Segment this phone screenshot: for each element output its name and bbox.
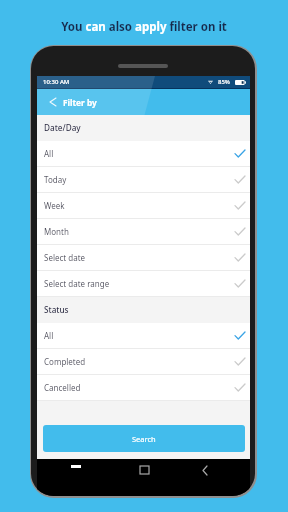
button[interactable]: Select date — [37, 245, 250, 271]
staticText: Cancelled — [44, 382, 81, 393]
button[interactable]: All — [37, 141, 250, 167]
staticText: Search — [132, 434, 156, 444]
button[interactable]: Today — [37, 167, 250, 193]
button[interactable]: Recent apps — [64, 457, 88, 475]
staticText: Today — [44, 174, 67, 185]
button[interactable]: Back — [41, 89, 65, 114]
button[interactable]: Home — [132, 461, 156, 479]
staticText: 85% — [218, 78, 230, 86]
staticText: Week — [44, 200, 65, 211]
button[interactable]: All — [37, 323, 250, 349]
staticText: All — [44, 330, 54, 341]
staticText: All — [44, 148, 54, 159]
button[interactable]: Search — [43, 425, 245, 452]
staticText: Date/Day — [44, 122, 81, 133]
staticText: Select date range — [44, 278, 110, 289]
staticText: 10:30 AM — [43, 78, 70, 86]
button[interactable]: Month — [37, 219, 250, 245]
staticText: Status — [44, 304, 69, 315]
staticText: You can also apply filter on it — [61, 19, 227, 35]
staticText: Completed — [44, 356, 86, 367]
staticText: Select date — [44, 252, 86, 263]
button[interactable]: Cancelled — [37, 375, 250, 401]
button[interactable]: Back — [193, 461, 217, 479]
button[interactable]: Completed — [37, 349, 250, 375]
staticText: Month — [44, 226, 69, 237]
button[interactable]: Select date range — [37, 271, 250, 297]
staticText: Filter by — [63, 97, 97, 108]
button[interactable]: Week — [37, 193, 250, 219]
